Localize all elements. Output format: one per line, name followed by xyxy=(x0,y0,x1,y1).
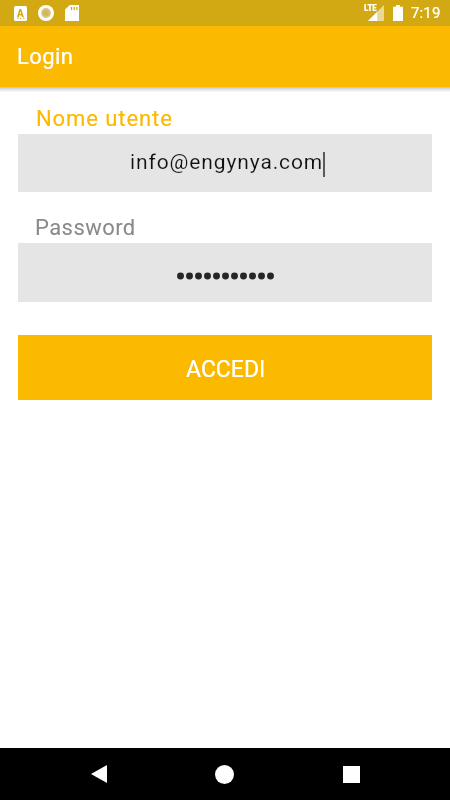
staticText: Password xyxy=(35,215,136,241)
staticText: Login xyxy=(17,44,74,70)
staticText: Nome utente xyxy=(36,106,173,132)
staticText: 7:19 xyxy=(411,4,441,22)
button[interactable]: Recent apps xyxy=(322,748,381,800)
staticText: A xyxy=(17,8,24,20)
button[interactable] xyxy=(18,243,432,302)
button[interactable]: Home xyxy=(195,748,254,800)
staticText: info@engynya.com xyxy=(130,150,324,175)
button[interactable]: Back xyxy=(69,748,128,800)
staticText: ACCEDI xyxy=(186,356,266,383)
button[interactable]: info@engynya.com xyxy=(18,134,432,192)
staticText: LTE xyxy=(364,3,377,14)
button[interactable]: ACCEDI xyxy=(18,335,432,400)
